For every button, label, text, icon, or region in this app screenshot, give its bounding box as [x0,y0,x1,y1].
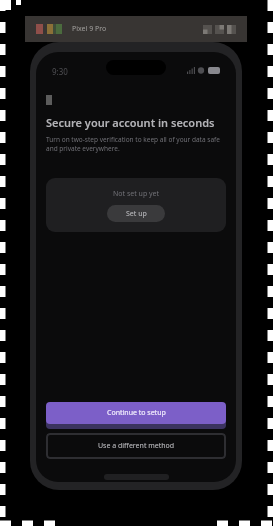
staticText: 9:30 [52,66,68,77]
button[interactable]: Window layout option [227,25,236,34]
staticText: Continue to setup [107,408,166,418]
staticText: Set up [126,209,147,219]
staticText: Secure your account in seconds [46,115,215,130]
button[interactable]: Use a different method [46,433,226,459]
button[interactable]: Window layout option [203,25,212,34]
staticText: Use a different method [98,441,175,451]
staticText: Not set up yet [113,189,160,199]
button[interactable]: Continue to setup [46,402,226,424]
staticText: Turn on two-step verification to keep al… [46,135,226,153]
button[interactable]: Window layout option [215,25,224,34]
staticText: Pixel 9 Pro [72,24,107,34]
button[interactable]: Set up [107,205,165,222]
button[interactable]: Not set up yet [46,178,226,232]
